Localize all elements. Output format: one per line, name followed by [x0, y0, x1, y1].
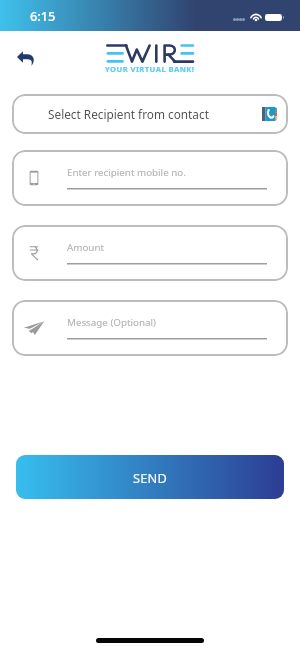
button[interactable]: Select Recipient from contact [12, 94, 288, 134]
staticText: Select Recipient from contact [48, 106, 209, 122]
button[interactable]: Back [8, 39, 41, 72]
staticText: YOUR VIRTUAL BANK! [105, 64, 195, 74]
staticText: SEND [133, 469, 168, 486]
staticText: Enter recipient mobile no. [67, 166, 186, 179]
button[interactable]: Message (Optional) [12, 300, 288, 356]
staticText: 6:15 [30, 7, 56, 24]
button[interactable]: Amount [12, 225, 288, 281]
button[interactable]: SEND [16, 455, 284, 499]
staticText: Message (Optional) [67, 316, 157, 329]
staticText: Amount [67, 241, 104, 254]
button[interactable]: Enter recipient mobile no. [12, 150, 288, 206]
